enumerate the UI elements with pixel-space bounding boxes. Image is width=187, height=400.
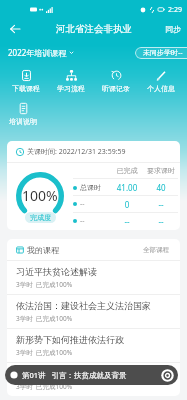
staticText: 3学时 已完成100% bbox=[16, 348, 73, 357]
staticText: 未同步学时-- bbox=[143, 48, 183, 58]
staticText: 个人信息 bbox=[147, 84, 175, 93]
staticText: 3学时 已完成100% bbox=[16, 382, 73, 391]
staticText: 要求课时 bbox=[144, 166, 178, 175]
staticText: 总课时 bbox=[80, 183, 101, 192]
staticText: 关课时间: 2022/12/31 23:59:59 bbox=[27, 147, 126, 157]
staticText: -- bbox=[144, 216, 178, 227]
staticText: -- bbox=[110, 216, 144, 227]
staticText: 听课记录 bbox=[102, 84, 130, 93]
staticText: 全部课程 bbox=[143, 246, 169, 254]
button[interactable]: 习近平扶贫论述解读 bbox=[7, 260, 180, 294]
staticText: 0 bbox=[110, 199, 144, 210]
staticText: 我的课程 bbox=[27, 245, 59, 255]
button[interactable]: 第01讲 引言：扶贫成就及背景 bbox=[5, 365, 178, 385]
button[interactable]: 学习流程 bbox=[52, 68, 90, 94]
staticText: 习近平扶贫论述解读 bbox=[16, 266, 97, 277]
staticText: 3学时 已完成100% bbox=[16, 314, 73, 323]
staticText: 100% bbox=[22, 186, 58, 205]
staticText: 培训说明 bbox=[9, 117, 37, 126]
staticText: 已完成 bbox=[110, 166, 144, 175]
staticText: -- bbox=[80, 216, 85, 226]
staticText: 41.00 bbox=[110, 182, 144, 193]
staticText: 同步 bbox=[165, 24, 181, 34]
button[interactable]: 下载课程 bbox=[7, 68, 45, 94]
button[interactable]: 全部课程 bbox=[140, 243, 172, 257]
staticText: 下载课程 bbox=[12, 84, 40, 93]
staticText: 2022年培训课程 bbox=[8, 47, 67, 58]
staticText: -- bbox=[144, 199, 178, 210]
button[interactable]: 2022年培训课程 bbox=[0, 45, 78, 60]
button[interactable]: 未同步学时-- bbox=[135, 47, 187, 59]
staticText: 依法治国：建设社会主义法治国家 bbox=[16, 300, 151, 311]
button[interactable]: 听课记录 bbox=[97, 68, 135, 94]
staticText: 完成度 bbox=[30, 213, 51, 222]
button[interactable]: 培训说明 bbox=[4, 101, 42, 127]
button[interactable]: 同步 bbox=[161, 21, 187, 37]
staticText: 学习流程 bbox=[57, 84, 85, 93]
staticText: 文化在乡村振兴中的作用 bbox=[16, 368, 115, 379]
staticText: 第01讲 引言：扶贫成就及背景 bbox=[22, 370, 127, 380]
staticText: 2:29 bbox=[168, 5, 182, 15]
button[interactable]: 个人信息 bbox=[142, 68, 180, 94]
staticText: 3学时 已完成100% bbox=[16, 280, 73, 289]
button[interactable]: Back bbox=[7, 21, 23, 37]
button[interactable]: 依法治国：建设社会主义法治国家 bbox=[7, 294, 180, 328]
button[interactable]: 新形势下如何推进依法行政 bbox=[7, 328, 180, 362]
staticText: -- bbox=[80, 199, 85, 209]
staticText: •• bbox=[39, 6, 44, 14]
button[interactable]: 文化在乡村振兴中的作用 bbox=[7, 362, 180, 396]
staticText: 40 bbox=[144, 182, 178, 193]
other: Play bbox=[161, 369, 174, 382]
staticText: 河北省注会非执业 bbox=[56, 23, 132, 35]
staticText: 新形势下如何推进依法行政 bbox=[16, 334, 124, 345]
